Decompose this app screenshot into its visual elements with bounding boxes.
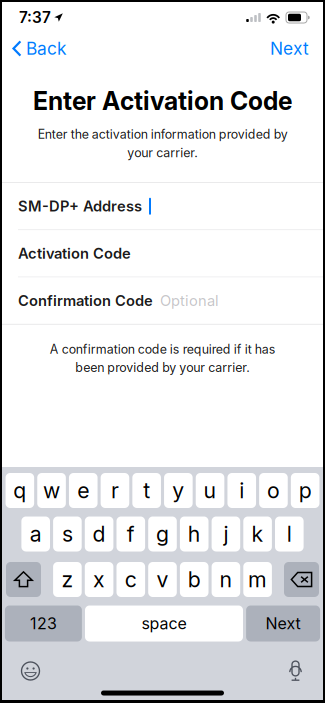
staticText: Confirmation Code [18, 292, 153, 309]
staticText: i [239, 478, 244, 503]
staticText: y [172, 478, 184, 503]
staticText: s [62, 521, 73, 547]
button[interactable]: p [291, 473, 319, 508]
staticText: t [143, 478, 150, 503]
staticText: u [204, 478, 217, 503]
staticText: g [156, 521, 169, 547]
staticText: 123 [30, 614, 57, 633]
staticText: e [77, 478, 89, 503]
staticText: A confirmation code is required if it ha… [49, 342, 275, 375]
staticText: 7:37 [19, 8, 51, 27]
button[interactable]: Activation Code [2, 230, 323, 277]
button[interactable]: n [212, 562, 240, 597]
staticText: x [93, 567, 105, 592]
button[interactable]: 123 [5, 605, 82, 641]
staticText: Optional [160, 292, 219, 309]
button[interactable]: s [53, 516, 82, 551]
staticText: w [43, 478, 60, 503]
staticText: b [188, 567, 201, 592]
staticText: Activation Code [18, 245, 131, 262]
button[interactable]: Delete [284, 562, 319, 597]
button[interactable]: c [116, 562, 145, 597]
button[interactable]: Next [246, 605, 320, 641]
staticText: o [267, 478, 280, 503]
button[interactable]: u [196, 473, 224, 508]
button[interactable]: z [53, 562, 82, 597]
staticText: l [287, 521, 292, 547]
staticText: h [188, 521, 201, 547]
button[interactable]: w [37, 473, 66, 508]
button[interactable]: g [148, 516, 177, 551]
button[interactable]: y [164, 473, 193, 508]
staticText: a [30, 521, 42, 547]
button[interactable]: space [85, 605, 243, 641]
staticText: j [223, 521, 228, 547]
staticText: Back [26, 38, 67, 59]
staticText: c [125, 567, 137, 592]
staticText: d [93, 521, 106, 547]
button[interactable]: q [6, 473, 34, 508]
staticText: Next [270, 38, 309, 59]
button[interactable]: l [275, 516, 304, 551]
button[interactable]: Next [258, 33, 323, 64]
button[interactable]: j [212, 516, 240, 551]
button[interactable]: x [85, 562, 113, 597]
staticText: Enter Activation Code [33, 86, 292, 116]
staticText: f [127, 521, 135, 547]
button[interactable]: b [180, 562, 208, 597]
button[interactable]: Dictation [289, 660, 302, 681]
staticText: m [248, 567, 267, 592]
staticText: space [141, 614, 186, 633]
staticText: r [111, 478, 119, 503]
button[interactable]: Back [2, 33, 79, 64]
staticText: Next [266, 614, 301, 633]
button[interactable]: v [148, 562, 177, 597]
button[interactable]: a [21, 516, 50, 551]
button[interactable]: m [243, 562, 272, 597]
staticText: n [219, 567, 232, 592]
staticText: SM-DP+ Address [18, 197, 142, 215]
button[interactable]: t [132, 473, 161, 508]
staticText: p [299, 478, 312, 503]
button[interactable]: Confirmation Code [2, 277, 323, 324]
staticText: Enter the activation information provide… [37, 127, 287, 160]
button[interactable]: Emoji keyboard [21, 661, 40, 680]
button[interactable]: d [85, 516, 113, 551]
button[interactable]: r [101, 473, 129, 508]
button[interactable]: e [69, 473, 98, 508]
staticText: k [252, 521, 264, 547]
button[interactable]: k [243, 516, 272, 551]
button[interactable]: i [227, 473, 256, 508]
button[interactable]: o [259, 473, 288, 508]
button[interactable]: SM-DP+ Address [2, 183, 323, 229]
button[interactable]: f [116, 516, 145, 551]
staticText: q [13, 478, 26, 503]
button[interactable]: h [180, 516, 208, 551]
button[interactable]: Shift [6, 562, 41, 597]
staticText: v [156, 567, 168, 592]
staticText: z [61, 567, 73, 592]
